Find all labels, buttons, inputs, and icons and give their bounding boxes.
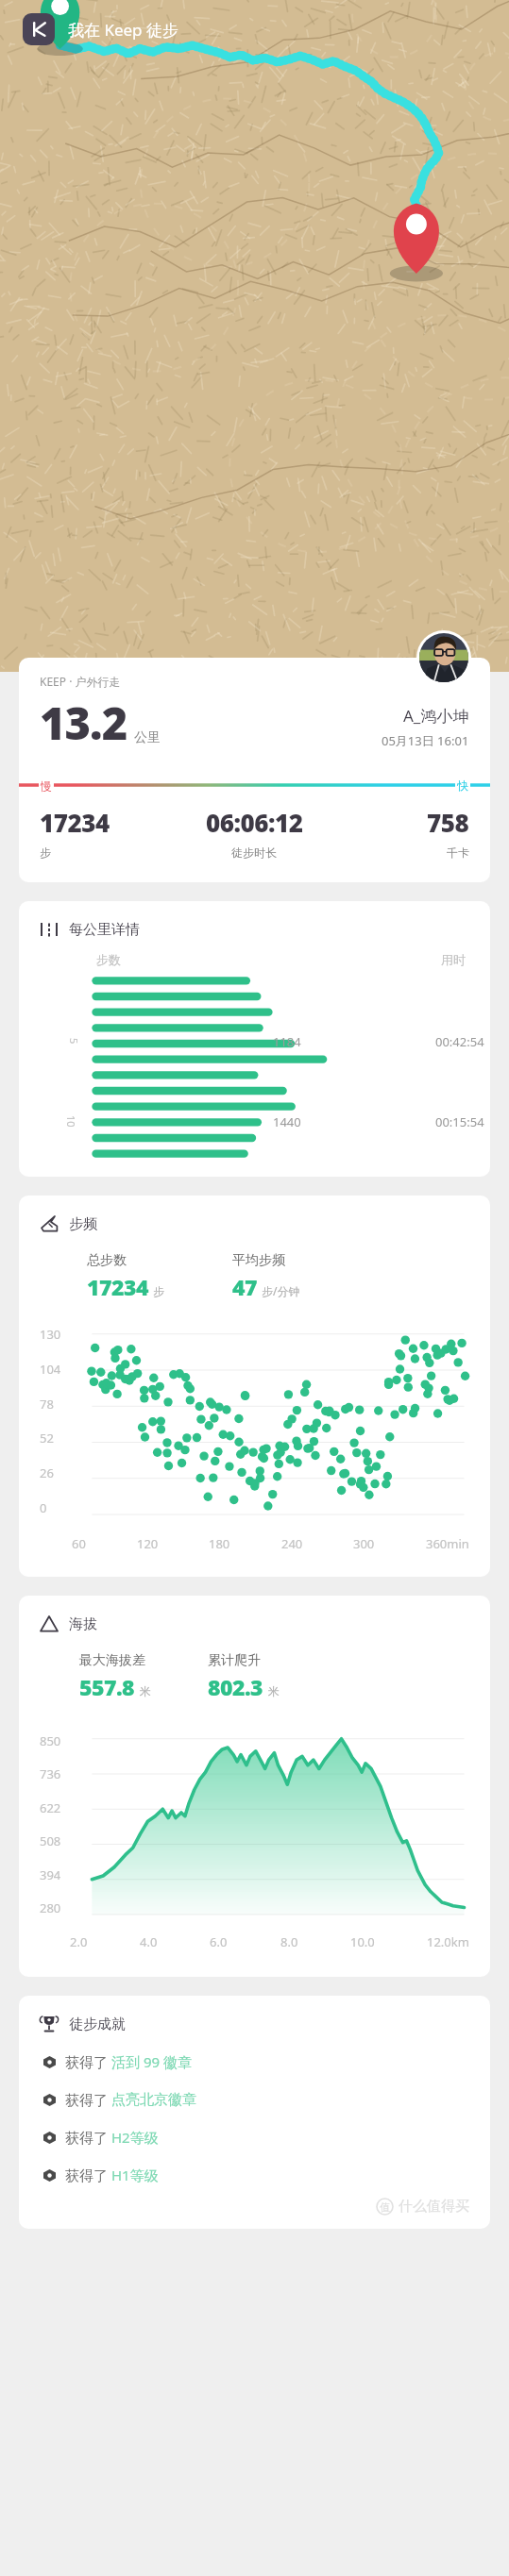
staticText: 06:06:12 xyxy=(206,806,303,839)
button[interactable]: 获得了 xyxy=(19,2156,490,2194)
staticText: 累计爬升 xyxy=(208,1652,261,1669)
staticText: 120 xyxy=(137,1535,159,1552)
staticText: 78 xyxy=(40,1396,54,1413)
staticText: 2.0 xyxy=(70,1933,88,1950)
button[interactable]: 每公里详情 xyxy=(19,901,490,1177)
staticText: 4.0 xyxy=(140,1933,158,1950)
staticText: 米 xyxy=(140,1684,151,1698)
staticText: 每公里详情 xyxy=(69,921,140,939)
button[interactable]: 我在 Keep 徒步 xyxy=(21,11,180,47)
staticText: 获得了 xyxy=(65,2128,111,2147)
staticText: 557.8 xyxy=(79,1672,135,1701)
staticText: 280 xyxy=(40,1899,61,1916)
staticText: 17234 xyxy=(40,806,110,839)
staticText: 总步数 xyxy=(87,1252,127,1269)
staticText: H1等级 xyxy=(111,2166,159,2184)
staticText: 850 xyxy=(40,1732,61,1749)
staticText: 13.2 xyxy=(40,693,127,753)
staticText: 26 xyxy=(40,1464,54,1481)
button[interactable]: 步频 xyxy=(19,1196,490,1577)
staticText: 17234 xyxy=(87,1272,148,1301)
staticText: 1440 xyxy=(273,1113,301,1129)
staticText: 什么值得买 xyxy=(399,2198,469,2216)
button[interactable]: 徒步成就 xyxy=(19,1996,490,2229)
staticText: 508 xyxy=(40,1832,61,1849)
staticText: 米 xyxy=(268,1684,280,1698)
staticText: 点亮北京徽章 xyxy=(111,2091,196,2109)
staticText: 180 xyxy=(209,1535,230,1552)
staticText: 10.0 xyxy=(350,1933,375,1950)
staticText: 海拔 xyxy=(69,1615,97,1633)
staticText: 60 xyxy=(72,1535,86,1552)
staticText: 公里 xyxy=(134,729,161,746)
staticText: 值 xyxy=(380,2200,390,2214)
staticText: 12.0km xyxy=(427,1933,469,1950)
staticText: 徒步成就 xyxy=(69,2016,126,2033)
staticText: 394 xyxy=(40,1866,61,1883)
staticText: 用时 xyxy=(441,952,466,967)
staticText: 240 xyxy=(281,1535,303,1552)
staticText: 5 xyxy=(67,1038,81,1045)
staticText: 徒步时长 xyxy=(231,845,277,860)
staticText: 00:15:54 xyxy=(435,1113,484,1129)
staticText: 52 xyxy=(40,1430,54,1447)
staticText: 47 xyxy=(232,1272,257,1301)
staticText: 获得了 xyxy=(65,2052,111,2071)
staticText: 05月13日 16:01 xyxy=(382,732,469,749)
staticText: 慢 xyxy=(41,778,52,793)
staticText: 步/分钟 xyxy=(262,1283,300,1298)
staticText: 104 xyxy=(40,1361,61,1378)
button[interactable]: User profile avatar xyxy=(419,633,468,682)
staticText: KEEP · 户外行走 xyxy=(40,674,121,689)
staticText: 步 xyxy=(40,845,51,860)
staticText: 步频 xyxy=(69,1215,97,1233)
button[interactable]: 海拔 xyxy=(19,1596,490,1977)
staticText: 1184 xyxy=(273,1033,301,1049)
staticText: 平均步频 xyxy=(232,1252,285,1269)
staticText: 最大海拔差 xyxy=(79,1652,145,1669)
staticText: 0 xyxy=(40,1499,47,1516)
staticText: A_鸿小坤 xyxy=(403,705,469,727)
staticText: 获得了 xyxy=(65,2090,111,2109)
staticText: 360min xyxy=(426,1535,469,1552)
staticText: 6.0 xyxy=(210,1933,228,1950)
staticText: 步 xyxy=(153,1284,164,1298)
button[interactable]: 获得了 xyxy=(19,2081,490,2118)
staticText: 千卡 xyxy=(447,845,469,860)
staticText: 130 xyxy=(40,1326,61,1343)
staticText: H2等级 xyxy=(111,2128,159,2147)
staticText: 获得了 xyxy=(65,2166,111,2184)
staticText: 00:42:54 xyxy=(435,1033,484,1049)
button[interactable]: 获得了 xyxy=(19,2043,490,2081)
staticText: 8.0 xyxy=(280,1933,298,1950)
staticText: 10 xyxy=(64,1115,78,1128)
button[interactable]: 获得了 xyxy=(19,2118,490,2156)
staticText: 736 xyxy=(40,1765,61,1782)
staticText: 758 xyxy=(427,806,469,839)
staticText: 300 xyxy=(353,1535,375,1552)
staticText: 快 xyxy=(457,778,468,793)
staticText: 622 xyxy=(40,1799,61,1816)
staticText: 活到 99 徽章 xyxy=(111,2052,192,2071)
staticText: 我在 Keep 徒步 xyxy=(68,19,178,41)
staticText: 802.3 xyxy=(208,1672,263,1701)
button[interactable]: KEEP · 户外行走 xyxy=(19,658,490,882)
staticText: 步数 xyxy=(96,952,121,967)
